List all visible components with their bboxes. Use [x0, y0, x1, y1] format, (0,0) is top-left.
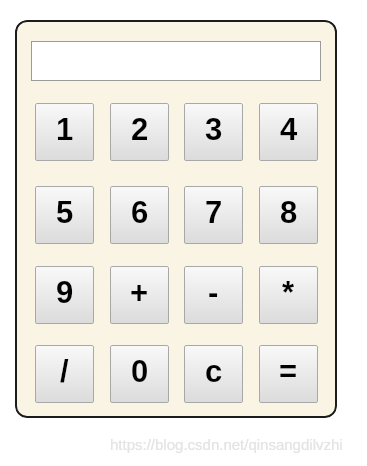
button[interactable]: 1 [35, 103, 94, 161]
staticText: - [208, 275, 219, 310]
staticText: 9 [56, 275, 74, 310]
button[interactable]: = [259, 345, 318, 403]
staticText: 5 [56, 195, 74, 230]
staticText: / [60, 354, 69, 389]
button[interactable]: 9 [35, 266, 94, 324]
button[interactable]: 5 [35, 186, 94, 244]
staticText: 3 [205, 112, 223, 147]
staticText: c [205, 354, 223, 389]
button[interactable]: + [110, 266, 169, 324]
button[interactable]: 7 [184, 186, 243, 244]
button[interactable]: 8 [259, 186, 318, 244]
staticText: 2 [131, 112, 149, 147]
staticText: = [279, 354, 298, 389]
staticText: * [282, 275, 295, 310]
button[interactable]: 2 [110, 103, 169, 161]
staticText: 0 [131, 354, 149, 389]
button[interactable]: * [259, 266, 318, 324]
button[interactable]: 6 [110, 186, 169, 244]
staticText: 7 [205, 195, 223, 230]
button[interactable] [31, 41, 321, 81]
button[interactable]: 3 [184, 103, 243, 161]
staticText: https://blog.csdn.net/qinsangdilvzhi [110, 436, 343, 453]
staticText: 4 [280, 112, 298, 147]
button[interactable]: 4 [259, 103, 318, 161]
button[interactable]: 0 [110, 345, 169, 403]
staticText: 6 [131, 195, 149, 230]
button[interactable]: / [35, 345, 94, 403]
staticText: 8 [280, 195, 298, 230]
button[interactable]: - [184, 266, 243, 324]
button[interactable]: c [184, 345, 243, 403]
staticText: + [130, 275, 149, 310]
staticText: 1 [56, 112, 74, 147]
